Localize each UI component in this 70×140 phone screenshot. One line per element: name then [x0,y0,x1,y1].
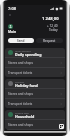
staticText: Stores and shops [8,61,33,65]
button[interactable]: Shared plan [5,110,65,130]
staticText: Savings [15,80,24,83]
button[interactable]: Stores and shops [8,120,62,129]
staticText: 7:08 [8,6,16,11]
staticText: + 12,40 [47,24,58,28]
button[interactable]: Stores and shops [8,58,62,67]
button[interactable]: Scan code [59,124,64,129]
staticText: Stores and shops [8,123,33,127]
staticText: Holiday fund [15,83,38,88]
staticText: Today [49,28,58,32]
staticText: Send [17,39,25,43]
button[interactable]: Send [8,38,34,43]
staticText: Main [8,29,17,33]
staticText: Shared plan [15,111,30,114]
staticText: 1 248,00 [42,16,59,22]
staticText: Transport tickets [8,102,33,106]
button[interactable]: Request [36,38,63,43]
button[interactable]: Transport tickets [8,99,62,108]
button[interactable]: Transport tickets [8,68,62,77]
staticText: Request [43,39,56,43]
staticText: Daily spending [15,52,42,57]
staticText: Household [15,114,35,119]
button[interactable]: Main account [5,48,65,77]
button[interactable]: Profile [8,24,13,29]
staticText: Stores and shops [8,92,33,96]
button[interactable]: Stores and shops [8,89,62,98]
staticText: Transport tickets [8,71,33,75]
button[interactable]: Savings [5,79,65,108]
staticText: Main account [15,49,31,52]
